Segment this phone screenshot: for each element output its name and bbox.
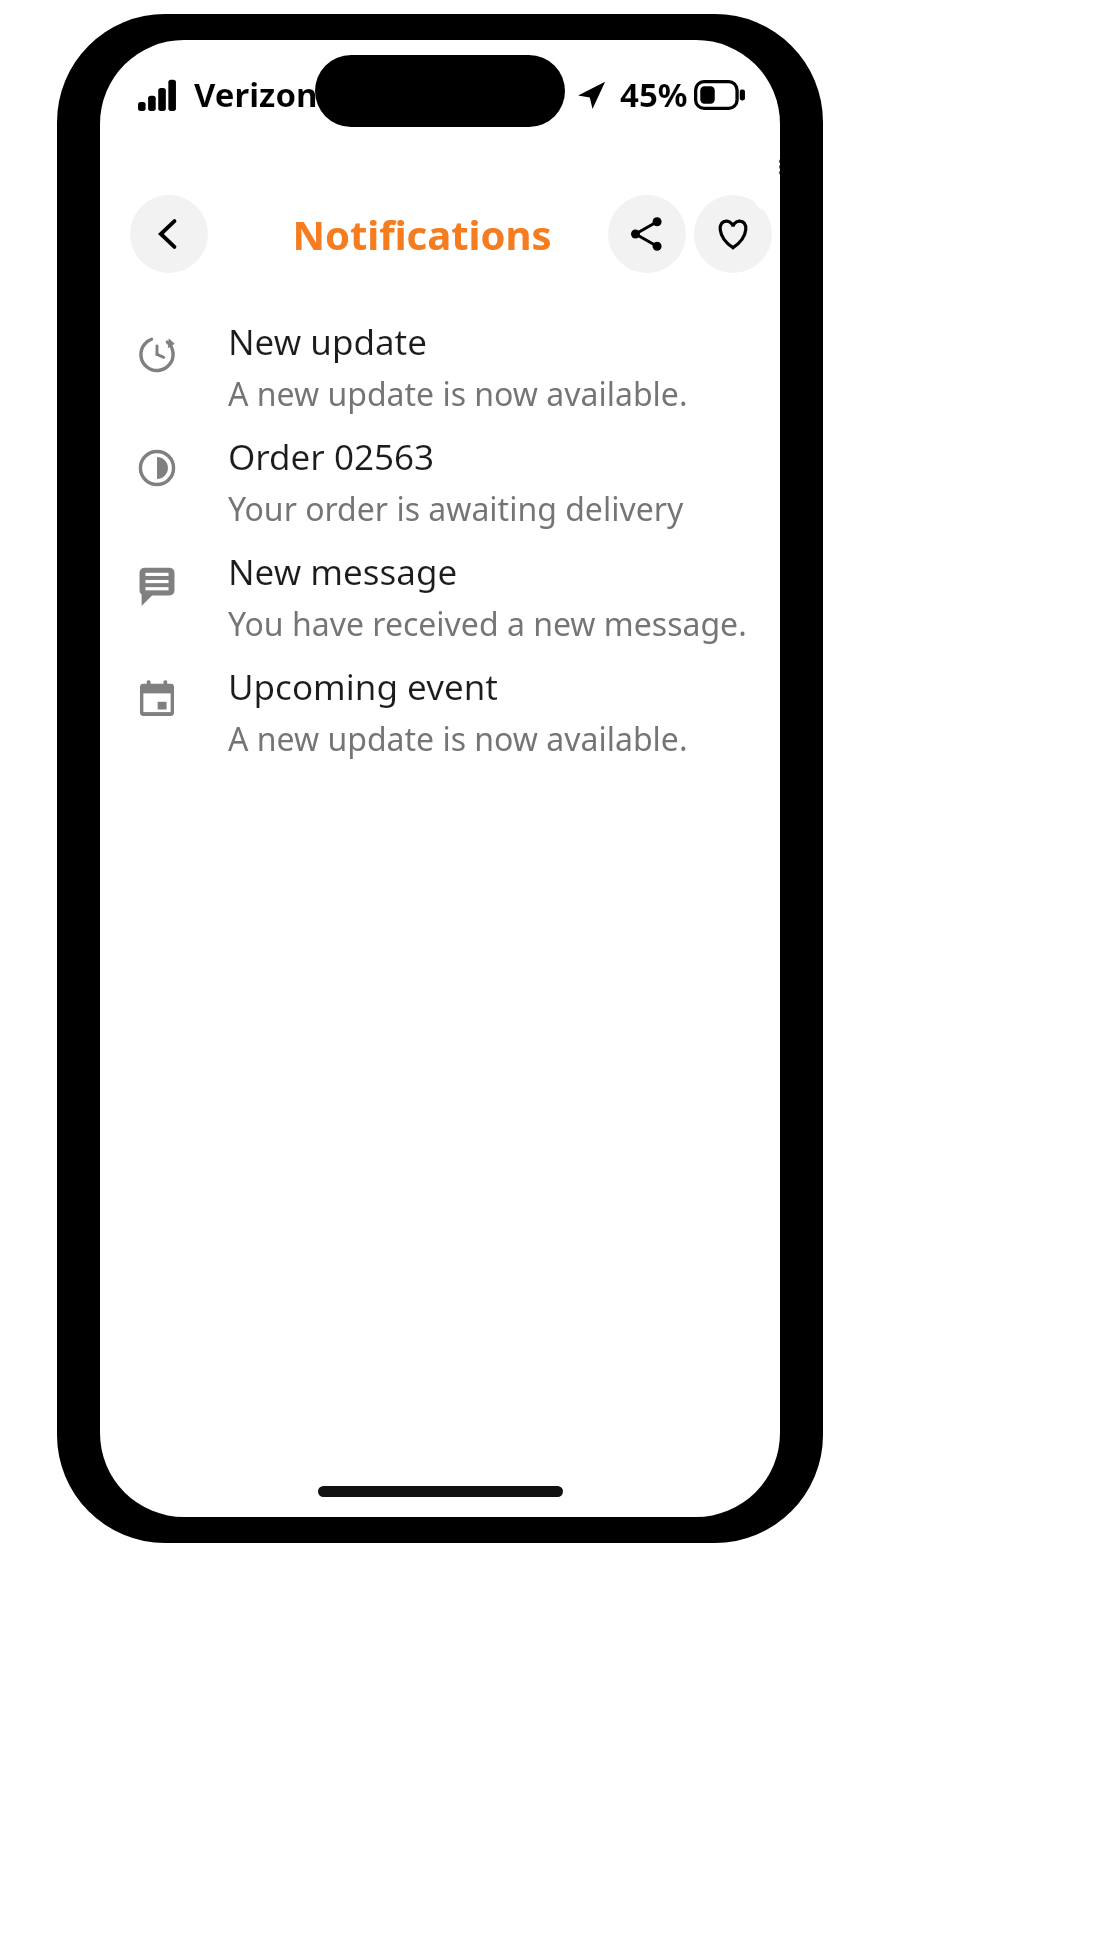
button[interactable]: More options: [754, 124, 780, 210]
staticText: A new update is now available.: [228, 372, 688, 416]
staticText: New message: [228, 548, 458, 596]
staticText: Verizon 5G: [194, 72, 369, 117]
button[interactable]: Order 02563: [100, 433, 780, 548]
button[interactable]: Upcoming event: [100, 663, 780, 778]
staticText: Notifications: [292, 207, 552, 261]
staticText: New update: [228, 318, 427, 366]
staticText: Your order is awaiting delivery: [228, 487, 684, 531]
button[interactable]: Favourite: [694, 195, 772, 273]
staticText: Upcoming event: [228, 663, 498, 711]
button[interactable]: New update: [100, 318, 780, 433]
staticText: You have received a new message.: [228, 602, 747, 646]
staticText: A new update is now available.: [228, 717, 688, 761]
button[interactable]: Back: [130, 195, 208, 273]
staticText: 45%: [620, 72, 688, 117]
button[interactable]: Share: [608, 195, 686, 273]
button[interactable]: New message: [100, 548, 780, 663]
staticText: Order 02563: [228, 433, 435, 481]
